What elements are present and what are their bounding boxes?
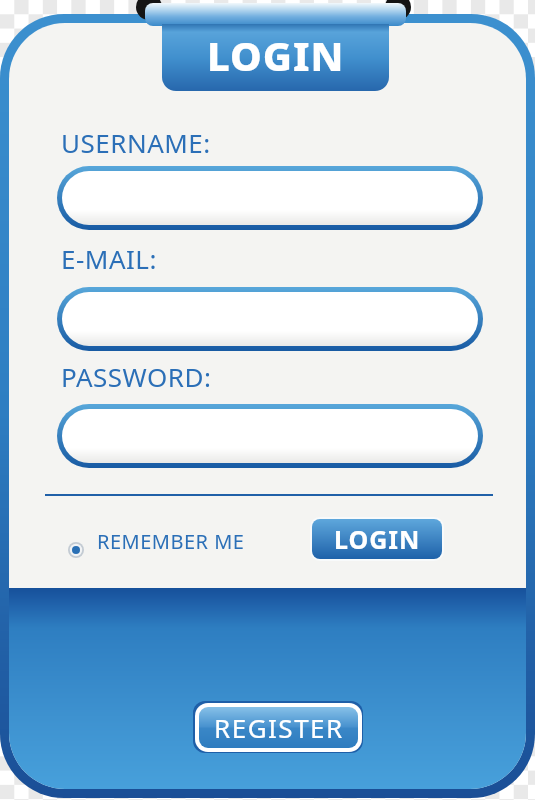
staticText: USERNAME: (61, 125, 211, 157)
staticText: LOGIN (334, 522, 421, 556)
button[interactable]: REMEMBER ME (60, 524, 250, 558)
button[interactable] (57, 287, 483, 351)
staticText: REGISTER (214, 710, 344, 745)
staticText: LOGIN (207, 28, 345, 82)
staticText: E-MAIL: (61, 241, 157, 273)
staticText: PASSWORD: (61, 359, 212, 391)
button[interactable] (57, 166, 483, 230)
button[interactable] (57, 404, 483, 468)
staticText: REMEMBER ME (97, 528, 245, 555)
button[interactable]: LOGIN (310, 517, 444, 561)
button[interactable]: REGISTER (193, 701, 363, 753)
